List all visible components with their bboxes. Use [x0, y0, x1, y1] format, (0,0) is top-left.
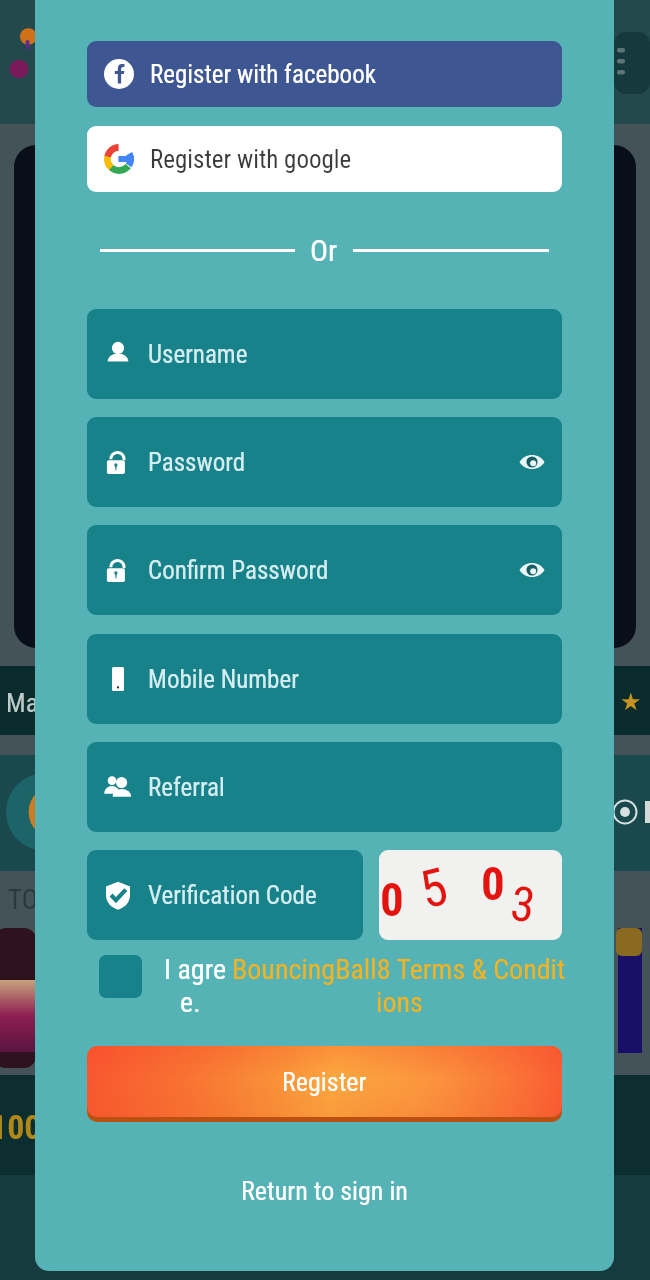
- button[interactable]: Referral: [87, 742, 562, 832]
- staticText: ions: [376, 986, 423, 1019]
- staticText: 1000: [0, 1107, 59, 1147]
- staticText: 0: [380, 872, 404, 927]
- staticText: Or: [310, 233, 338, 268]
- button[interactable]: Return to sign in: [35, 1167, 614, 1215]
- staticText: Mobile Number: [148, 665, 299, 694]
- staticText: Password: [148, 448, 246, 477]
- staticText: Confirm Password: [148, 556, 329, 585]
- button[interactable]: Username: [87, 309, 562, 399]
- button[interactable]: Verification Code: [87, 850, 363, 940]
- staticText: Main: [6, 688, 57, 718]
- staticText: 3: [507, 875, 539, 933]
- button[interactable]: Password: [87, 417, 562, 507]
- staticText: Register with facebook: [150, 60, 376, 89]
- button[interactable]: Refresh verification code: [379, 850, 562, 940]
- button[interactable]: Confirm Password: [87, 525, 562, 615]
- staticText: Username: [148, 340, 248, 369]
- staticText: TOP: [8, 884, 53, 916]
- button[interactable]: Show password: [512, 442, 552, 482]
- staticText: Return to sign in: [241, 1176, 408, 1206]
- staticText: ★: [620, 688, 642, 716]
- button[interactable]: Agree to terms and conditions: [99, 955, 142, 998]
- button[interactable]: Register: [87, 1046, 562, 1117]
- button[interactable]: Register with facebook: [87, 41, 562, 107]
- staticText: 0: [481, 856, 505, 911]
- staticText: Register: [282, 1067, 367, 1097]
- staticText: Verification Code: [148, 881, 317, 910]
- button[interactable]: Register with google: [87, 126, 562, 192]
- staticText: Register with google: [150, 145, 352, 174]
- staticText: e.: [180, 986, 201, 1019]
- button[interactable]: Mobile Number: [87, 634, 562, 724]
- staticText: I agre: [164, 953, 227, 986]
- staticText: BouncingBall8 Terms & Condit: [232, 953, 566, 986]
- button[interactable]: Show password: [512, 550, 552, 590]
- staticText: Referral: [148, 773, 225, 802]
- staticText: 5: [414, 856, 454, 921]
